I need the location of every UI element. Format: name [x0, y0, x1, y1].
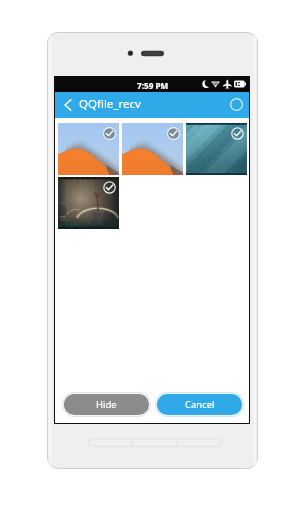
- button[interactable]: Photo: [122, 123, 183, 175]
- button[interactable]: Hide: [62, 392, 151, 417]
- staticText: 7:59 PM: [137, 80, 169, 91]
- staticText: Cancel: [185, 398, 215, 411]
- button[interactable]: Photo: [58, 123, 119, 175]
- staticText: Hide: [96, 398, 117, 411]
- staticText: QQfile_recv: [79, 96, 141, 112]
- button[interactable]: Cancel: [155, 392, 244, 417]
- button[interactable]: Photo: [58, 177, 119, 229]
- button[interactable]: Back: [57, 92, 79, 118]
- button[interactable]: Photo: [186, 123, 247, 175]
- button[interactable]: Select all: [228, 96, 245, 113]
